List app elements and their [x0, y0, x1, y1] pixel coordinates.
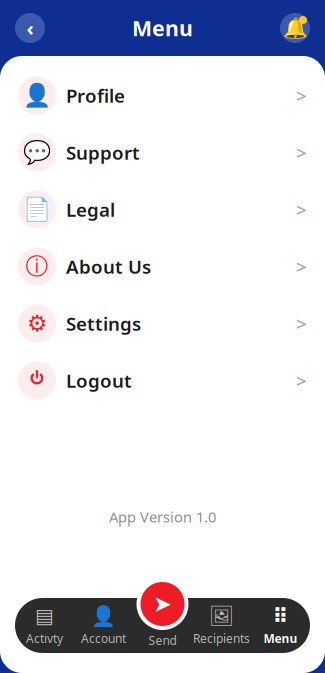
staticText: About Us — [66, 254, 151, 279]
button[interactable]: 📄 — [0, 181, 325, 238]
staticText: ⏻ — [30, 366, 44, 394]
staticText: 🔔 — [282, 17, 307, 39]
staticText: ➤ — [153, 591, 172, 617]
staticText: 👤 — [23, 83, 51, 108]
staticText: Send — [148, 632, 176, 648]
staticText: Profile — [66, 83, 125, 108]
button[interactable]: Send — [136, 578, 188, 630]
staticText: Activty — [26, 630, 63, 646]
staticText: > — [296, 140, 307, 165]
staticText — [160, 603, 165, 629]
staticText: ⠿ — [272, 605, 288, 627]
button[interactable]: ⠿ — [251, 598, 310, 653]
button[interactable] — [133, 598, 192, 653]
staticText: Account — [81, 630, 126, 646]
button[interactable]: Back — [10, 8, 50, 48]
staticText: Menu — [132, 14, 193, 42]
staticText: ⓘ — [25, 253, 48, 280]
staticText: App Version 1.0 — [109, 507, 216, 526]
staticText: Logout — [66, 368, 132, 393]
staticText: 📄 — [23, 197, 51, 222]
staticText: ⚙ — [27, 311, 47, 336]
staticText: 🖼 — [209, 605, 234, 627]
staticText: > — [296, 83, 307, 108]
staticText: 💬 — [23, 140, 51, 165]
button[interactable]: ⏻ — [0, 352, 325, 409]
staticText: > — [296, 254, 307, 279]
staticText: Recipients — [193, 630, 250, 646]
staticText: > — [296, 197, 307, 222]
button[interactable]: 👤 — [0, 67, 325, 124]
button[interactable]: ⚙ — [0, 295, 325, 352]
button[interactable]: ▤ — [15, 598, 74, 653]
button[interactable]: Notifications — [275, 8, 315, 48]
button[interactable]: ⓘ — [0, 238, 325, 295]
staticText: ▤ — [35, 605, 54, 627]
staticText: 👤 — [91, 605, 116, 627]
staticText: Legal — [66, 197, 115, 222]
button[interactable]: 🖼 — [192, 598, 251, 653]
staticText: > — [296, 311, 307, 336]
button[interactable]: 💬 — [0, 124, 325, 181]
staticText: Menu — [263, 630, 297, 646]
staticText: > — [296, 368, 307, 393]
button[interactable]: 👤 — [74, 598, 133, 653]
staticText: Settings — [66, 311, 141, 336]
staticText: Support — [66, 140, 140, 165]
staticText: ‹ — [26, 15, 33, 41]
